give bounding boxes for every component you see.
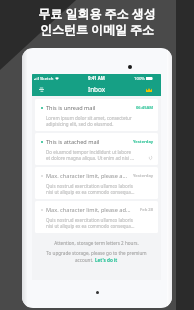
staticText: Quis nostrud exercitation ullamco labori… xyxy=(46,217,135,229)
staticText: Yesterday xyxy=(133,139,154,145)
staticText: Feb 28 xyxy=(140,207,154,213)
staticText: This is attached mail xyxy=(46,138,100,146)
button[interactable]: Max. character limit, please a... xyxy=(35,167,158,199)
staticText: Yesterday xyxy=(133,173,154,179)
button[interactable]: This is attached mail xyxy=(35,133,158,165)
staticText: Sketch xyxy=(40,75,54,81)
staticText: Inbox xyxy=(88,85,106,94)
staticText: Lorem ipsum dolor sit amet, consectetur … xyxy=(46,115,132,127)
staticText: Max. character limit, please a... xyxy=(46,172,127,180)
staticText: account. xyxy=(75,257,95,263)
staticText: 9:41 AM xyxy=(88,75,105,81)
staticText: 100% xyxy=(134,75,145,81)
staticText: To upgrade storage, please go to the pre… xyxy=(46,250,147,256)
button[interactable]: Premium xyxy=(144,85,153,94)
button[interactable]: Menu xyxy=(36,84,46,94)
button[interactable]: This is unread mail xyxy=(35,99,158,131)
staticText: Attention, storage term letters 2 hours. xyxy=(54,240,139,246)
button[interactable]: Let's do it xyxy=(95,257,118,263)
staticText: Quis nostrud exercitation ullamco labori… xyxy=(46,183,135,195)
staticText: Max. character limit, please ad... xyxy=(46,206,131,214)
staticText: Do eiusmod tempor incididunt ut labore e… xyxy=(46,149,134,161)
staticText: 무료 일회용 주소 생성 인스턴트 이메일 주소 xyxy=(38,5,156,38)
staticText: This is unread mail xyxy=(46,104,96,112)
button[interactable]: Max. character limit, please ad... xyxy=(35,201,158,233)
staticText: 06:45AM xyxy=(136,105,154,111)
